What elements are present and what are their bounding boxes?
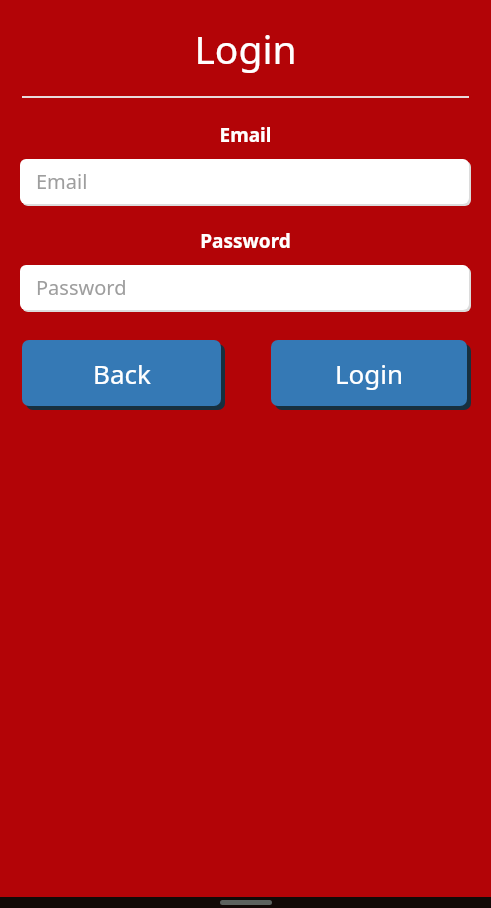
other: Home gesture bbox=[220, 900, 272, 905]
staticText: Login bbox=[335, 356, 404, 391]
staticText: Login bbox=[0, 22, 491, 75]
staticText: Email bbox=[22, 122, 469, 148]
staticText: Email bbox=[36, 168, 88, 195]
button[interactable]: Email bbox=[20, 159, 471, 206]
button[interactable]: Password bbox=[20, 265, 471, 312]
button[interactable]: Login bbox=[271, 340, 467, 406]
button[interactable]: Back bbox=[22, 340, 221, 406]
staticText: Password bbox=[36, 274, 127, 301]
staticText: Password bbox=[22, 228, 469, 254]
staticText: Back bbox=[93, 356, 151, 391]
